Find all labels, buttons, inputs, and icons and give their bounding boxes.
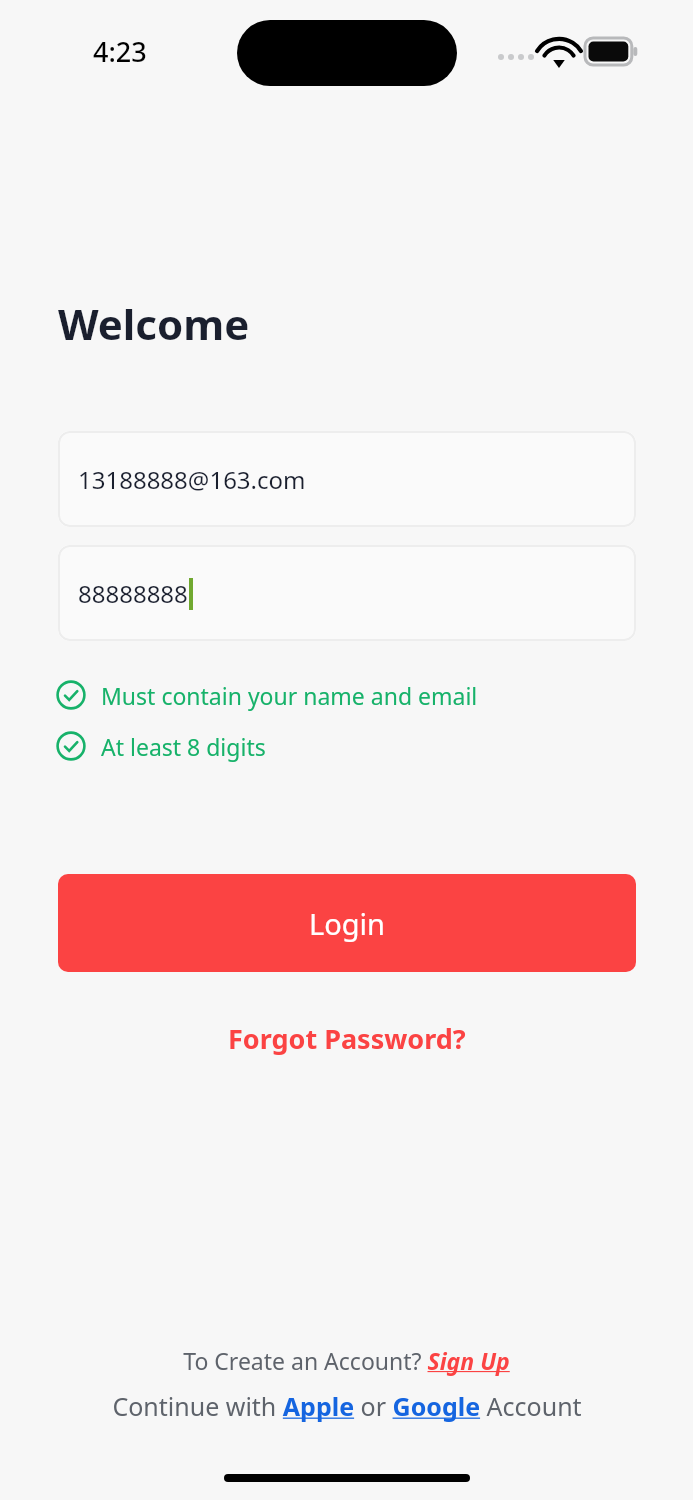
button[interactable]: Login [58,874,636,972]
staticText: Login [309,904,385,943]
button[interactable]: 13188888@163.com [58,431,636,527]
staticText: To Create an Account? Sign Up [183,1345,510,1376]
staticText: 13188888@163.com [78,463,306,496]
staticText: 88888888 [78,577,188,610]
staticText: Continue with Apple or Google Account [112,1389,582,1423]
button[interactable]: Continue with Apple or Google Account [0,1384,693,1428]
button[interactable]: Forgot Password? [0,1008,693,1068]
staticText: At least 8 digits [101,731,266,762]
staticText: 4:23 [93,33,147,70]
button[interactable]: To Create an Account? Sign Up [0,1338,693,1382]
button[interactable]: 88888888 [58,545,636,641]
staticText: Welcome [58,295,250,352]
staticText: Must contain your name and email [101,680,478,711]
staticText: Forgot Password? [228,1020,466,1057]
